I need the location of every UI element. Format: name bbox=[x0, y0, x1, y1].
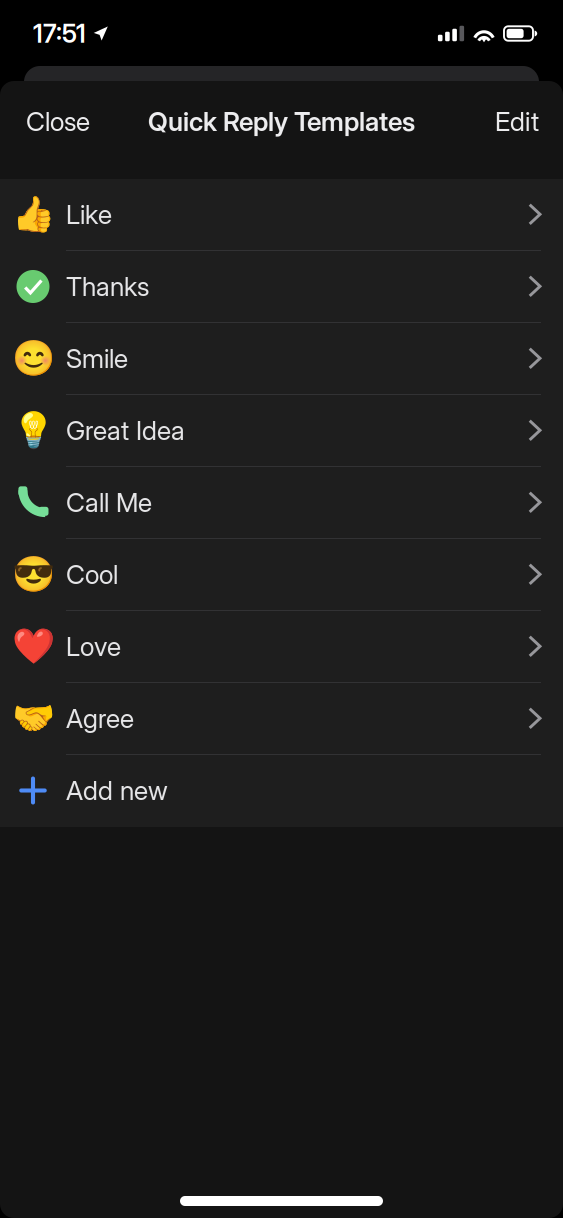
staticText: Close bbox=[26, 106, 90, 137]
button[interactable]: Close bbox=[16, 92, 100, 151]
staticText: Thanks bbox=[66, 271, 149, 302]
button[interactable]: Call Me bbox=[0, 467, 563, 539]
button[interactable]: 😊 bbox=[0, 323, 563, 395]
staticText: Quick Reply Templates bbox=[148, 106, 415, 137]
button[interactable]: 🤝 bbox=[0, 683, 563, 755]
staticText: 17:51 bbox=[33, 18, 86, 49]
button[interactable]: 😎 bbox=[0, 539, 563, 611]
button[interactable]: Add new bbox=[0, 755, 563, 827]
staticText: Add new bbox=[66, 775, 168, 806]
button[interactable]: ❤️ bbox=[0, 611, 563, 683]
staticText: Great Idea bbox=[66, 415, 185, 446]
staticText: Call Me bbox=[66, 487, 152, 518]
staticText: Smile bbox=[66, 343, 128, 374]
staticText: 🤝 bbox=[11, 698, 54, 739]
staticText: Like bbox=[66, 199, 112, 230]
button[interactable]: Thanks bbox=[0, 251, 563, 323]
staticText: 👍 bbox=[11, 194, 54, 235]
staticText: ❤️ bbox=[11, 626, 54, 667]
staticText: Cool bbox=[66, 559, 118, 590]
staticText: Edit bbox=[495, 106, 539, 137]
staticText: 😎 bbox=[11, 554, 54, 595]
staticText: Love bbox=[66, 631, 121, 662]
button[interactable]: 👍 bbox=[0, 179, 563, 251]
staticText: Agree bbox=[66, 703, 134, 734]
staticText: 😊 bbox=[11, 338, 54, 379]
staticText: 💡 bbox=[11, 410, 54, 451]
button[interactable]: 💡 bbox=[0, 395, 563, 467]
button[interactable]: Edit bbox=[485, 92, 549, 151]
